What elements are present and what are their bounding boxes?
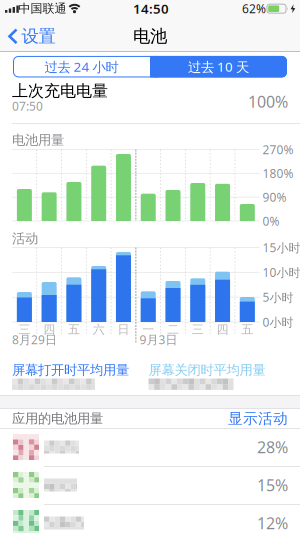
button[interactable]: 屏幕关闭时平均用量 [148, 363, 278, 377]
staticText: 电池 [133, 26, 167, 47]
staticText: 9月3日 [139, 331, 177, 347]
staticText: 15% [257, 474, 288, 496]
staticText: 应用的电池用量 [12, 410, 103, 427]
staticText: 三 [192, 322, 204, 337]
button[interactable]: 过去 10 天 [150, 56, 287, 77]
staticText: 显示活动 [228, 409, 288, 427]
staticText: 二 [167, 322, 179, 337]
staticText: 0小时 [262, 314, 293, 330]
button[interactable]: 28% [0, 428, 300, 466]
staticText: 12% [257, 512, 288, 533]
staticText: 日 [117, 322, 129, 337]
staticText: 8月29日 [12, 331, 57, 347]
staticText: 28% [257, 436, 288, 458]
staticText: 屏幕打开时平均用量 [12, 362, 129, 378]
staticText: 过去 10 天 [188, 58, 249, 75]
staticText: 五 [241, 322, 253, 337]
staticText: 中国联通 [18, 1, 66, 16]
staticText: 270% [262, 141, 293, 157]
staticText: 15小时 [262, 239, 300, 255]
staticText: 一 [142, 322, 154, 337]
staticText: 六 [93, 322, 105, 337]
staticText: 活动 [12, 230, 38, 247]
staticText: 180% [262, 165, 293, 181]
staticText: 设置 [21, 26, 55, 47]
staticText: 100% [248, 91, 288, 112]
staticText: 四 [216, 322, 228, 337]
staticText: 62% [242, 0, 266, 16]
staticText: 过去 24 小时 [44, 58, 118, 75]
staticText: 三 [18, 322, 30, 337]
staticText: 5小时 [262, 289, 293, 305]
staticText: 90% [262, 189, 286, 205]
staticText: 五 [68, 322, 80, 337]
staticText: 0% [262, 213, 279, 229]
button[interactable]: 15% [0, 466, 300, 504]
staticText: 10小时 [262, 264, 300, 280]
staticText: 电池用量 [12, 132, 64, 148]
staticText: 07:50 [12, 98, 43, 114]
button[interactable]: 设置 [4, 22, 62, 50]
staticText: 14:50 [133, 0, 169, 17]
staticText: 屏幕关闭时平均用量 [148, 362, 265, 378]
button[interactable]: 显示活动 [218, 408, 288, 428]
button[interactable]: 屏幕打开时平均用量 [12, 363, 142, 377]
staticText: 四 [43, 322, 55, 337]
button[interactable]: 12% [0, 504, 300, 533]
button[interactable]: 过去 24 小时 [14, 57, 149, 76]
staticText: 上次充电电量 [12, 81, 108, 101]
